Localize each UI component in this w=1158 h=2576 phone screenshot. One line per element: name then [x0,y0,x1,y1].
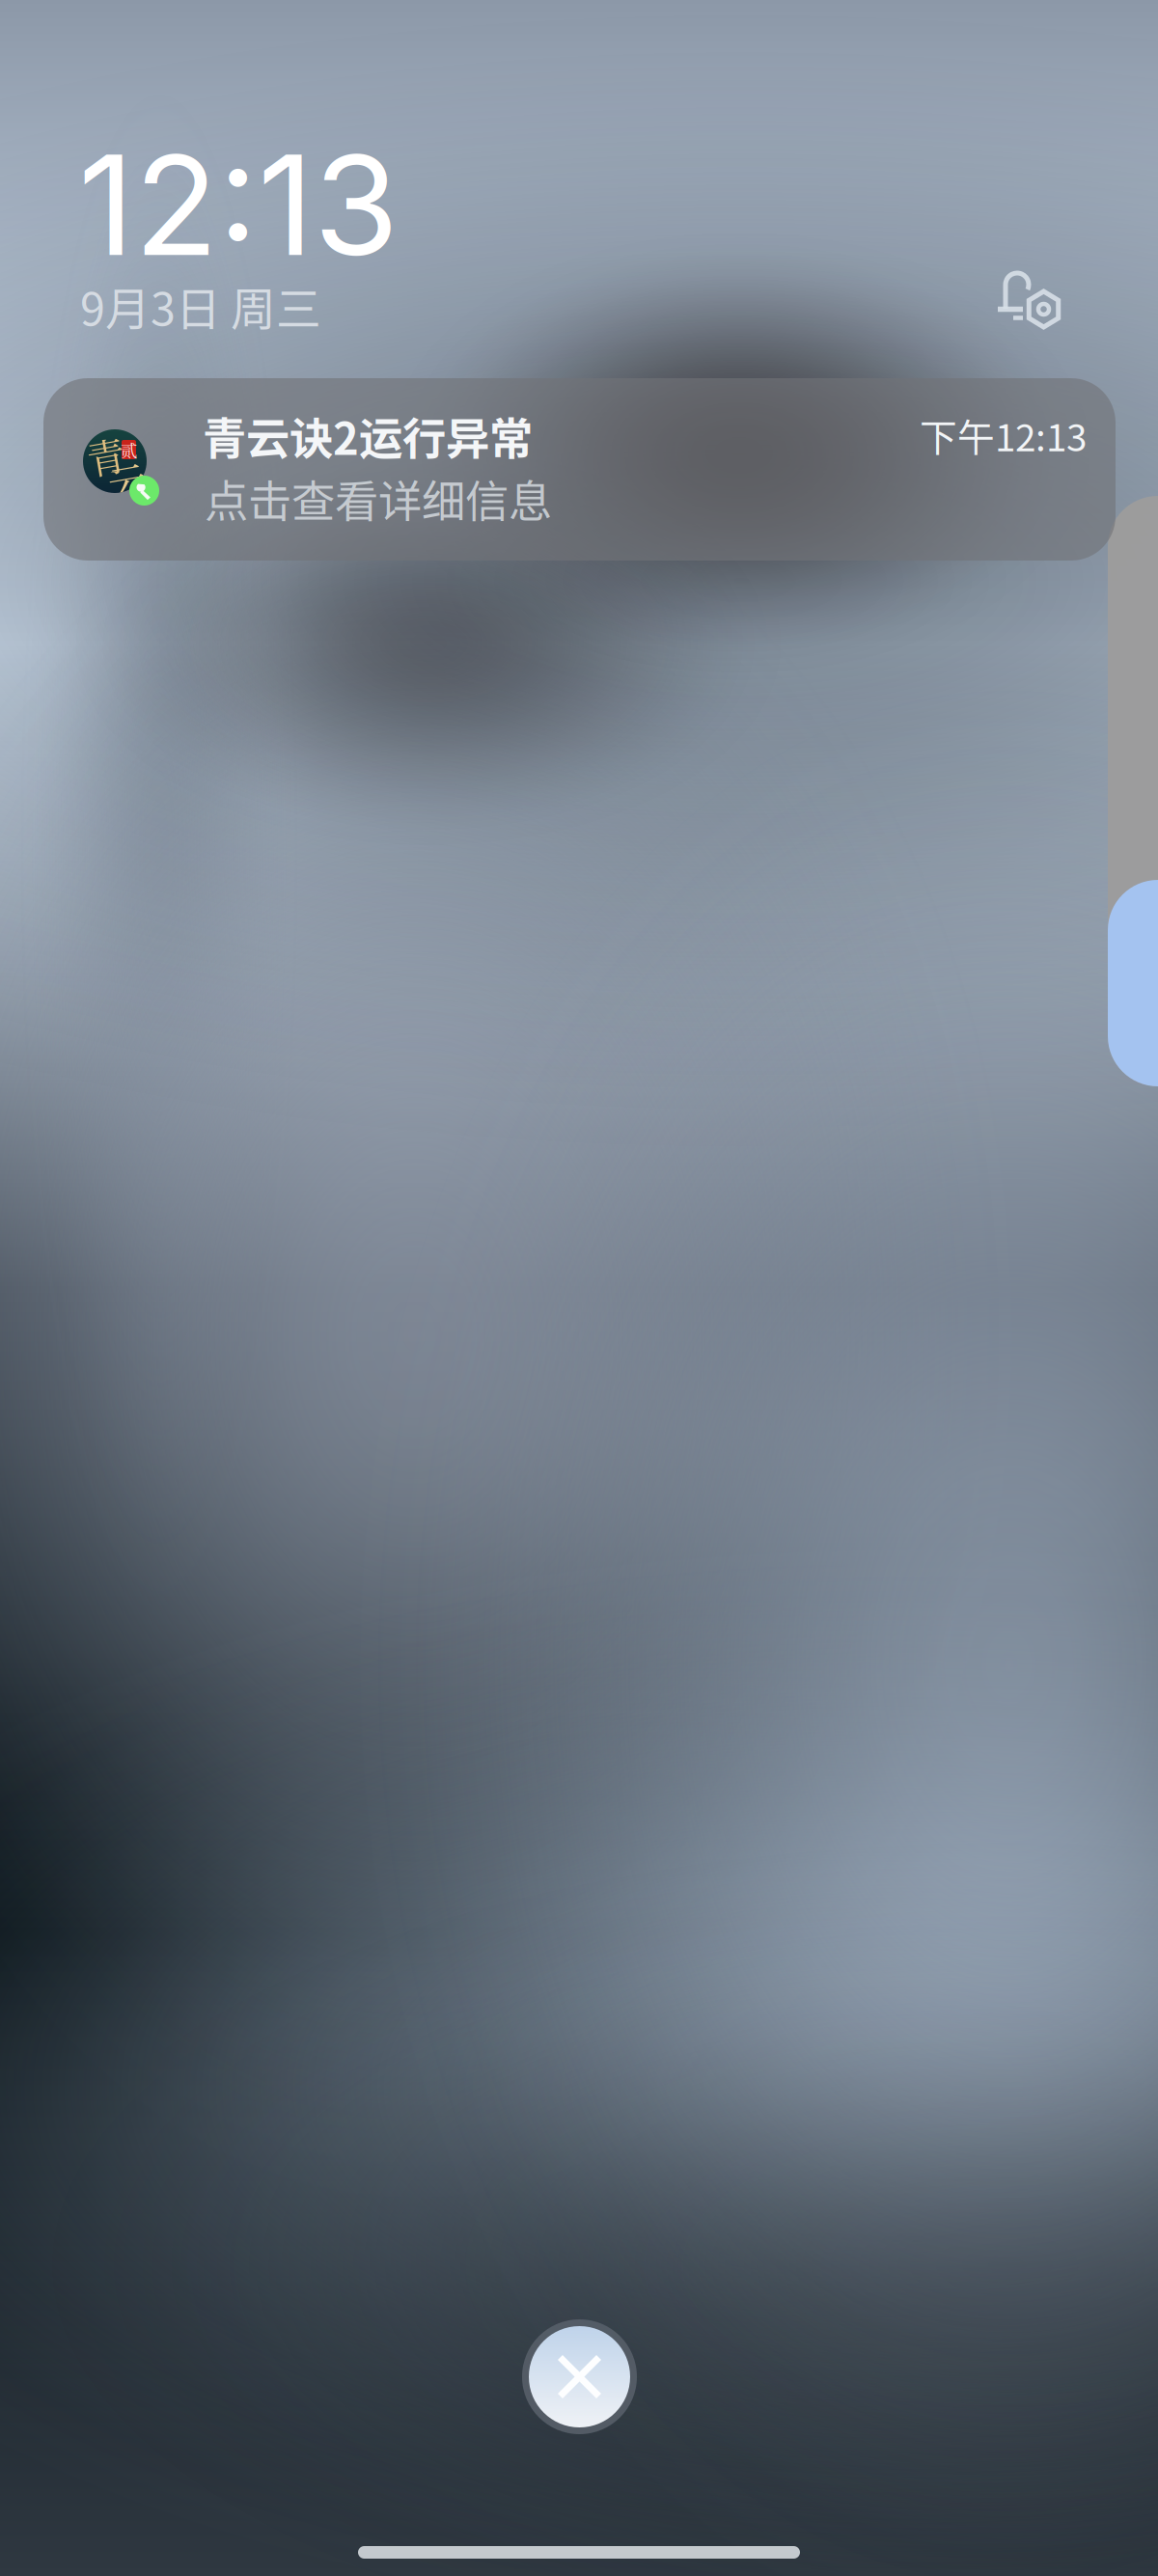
button[interactable]: Notification settings [991,265,1062,327]
staticText: 青 [87,427,125,483]
staticText: 贰 [121,438,137,462]
button[interactable]: 青 [43,378,1116,561]
staticText: 12:13 [78,122,399,288]
staticText: 下午12:13 [920,408,1087,462]
staticText: 青云诀2运行异常 [203,404,533,468]
staticText: 9月3日 周三 [80,273,321,338]
button[interactable]: Close [522,2319,637,2434]
staticText: 云 [108,452,147,508]
staticText: 点击查看详细信息 [205,467,552,530]
